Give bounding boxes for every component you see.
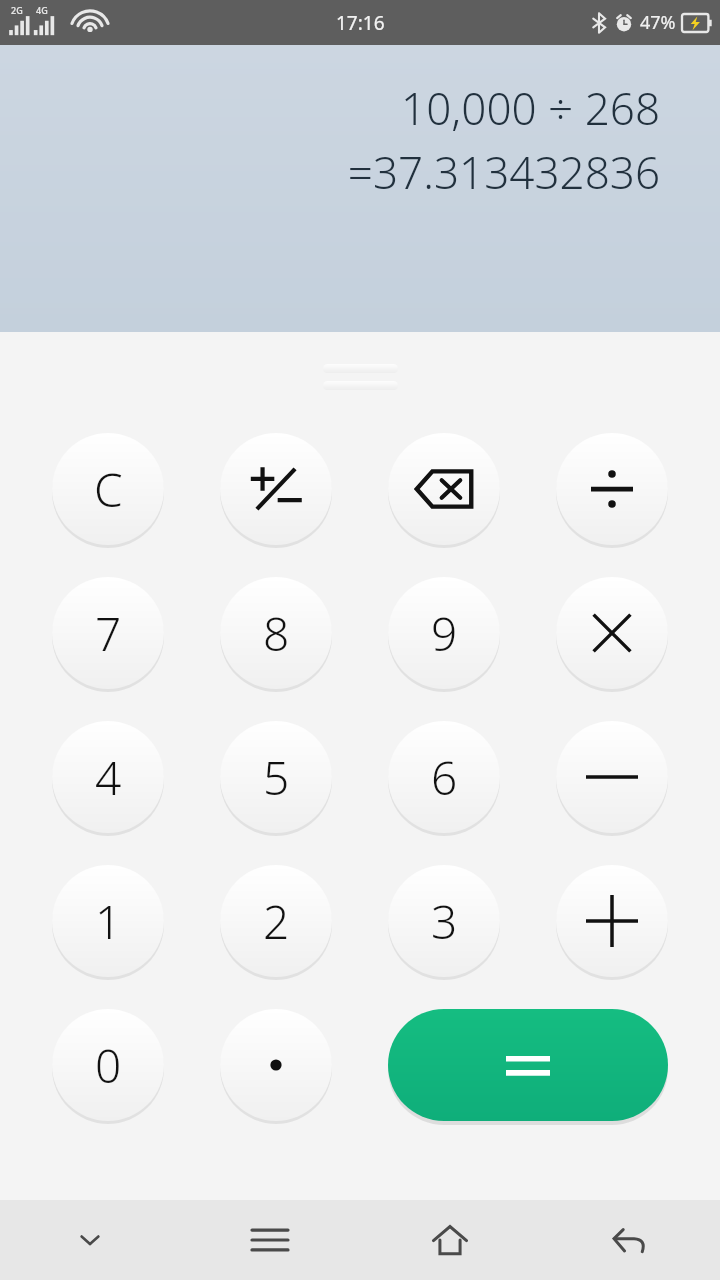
button[interactable]: Back: [540, 1200, 720, 1280]
button[interactable]: Equals: [388, 1009, 668, 1121]
staticText: 5: [263, 746, 290, 809]
button[interactable]: Collapse: [0, 1200, 180, 1280]
staticText: 2: [263, 890, 290, 953]
button[interactable]: Menu: [180, 1200, 360, 1280]
button[interactable]: 7: [52, 577, 164, 689]
staticText: 4G: [36, 4, 48, 16]
button[interactable]: Home: [360, 1200, 540, 1280]
staticText: 3: [431, 890, 458, 953]
other: Battery charging: [682, 14, 712, 32]
staticText: 8: [263, 602, 290, 665]
button[interactable]: Multiply: [556, 577, 668, 689]
staticText: 7: [95, 602, 122, 665]
button[interactable]: 5: [220, 721, 332, 833]
staticText: 2G: [11, 4, 23, 16]
button[interactable]: Backspace: [388, 433, 500, 545]
staticText: 10,000 ÷ 268: [401, 78, 660, 138]
button[interactable]: Plus: [556, 865, 668, 977]
other: Bluetooth: [591, 12, 607, 34]
staticText: =37.313432836: [347, 142, 660, 202]
staticText: C: [94, 458, 123, 521]
staticText: 6: [431, 746, 458, 809]
button[interactable]: Plus minus: [220, 433, 332, 545]
button[interactable]: 1: [52, 865, 164, 977]
button[interactable]: 9: [388, 577, 500, 689]
button[interactable]: 3: [388, 865, 500, 977]
button[interactable]: 2: [220, 865, 332, 977]
staticText: 1: [95, 890, 122, 953]
button[interactable]: 6: [388, 721, 500, 833]
staticText: 9: [431, 602, 458, 665]
button[interactable]: Minus: [556, 721, 668, 833]
staticText: 17:16: [336, 10, 385, 36]
other: Alarm: [614, 13, 634, 33]
button[interactable]: 4: [52, 721, 164, 833]
button[interactable]: 0: [52, 1009, 164, 1121]
button[interactable]: Divide: [556, 433, 668, 545]
button[interactable]: 8: [220, 577, 332, 689]
staticText: 0: [95, 1034, 122, 1097]
staticText: 4: [95, 746, 122, 809]
button[interactable]: Decimal point: [220, 1009, 332, 1121]
staticText: 47%: [640, 10, 676, 35]
button[interactable]: C: [52, 433, 164, 545]
